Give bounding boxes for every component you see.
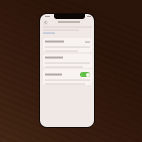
button[interactable]: [43, 54, 92, 68]
button[interactable]: Back: [43, 20, 48, 25]
button[interactable]: [43, 38, 92, 52]
button[interactable]: [43, 69, 92, 85]
